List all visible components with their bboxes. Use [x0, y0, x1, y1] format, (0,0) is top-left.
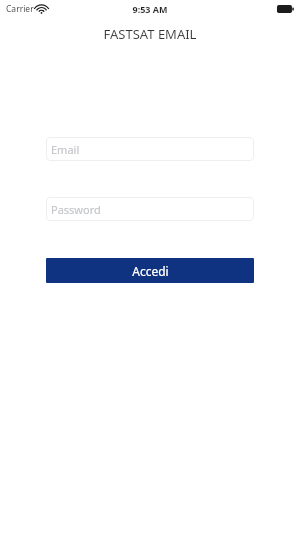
staticText: Accedi — [132, 263, 169, 279]
staticText: Carrier — [6, 3, 34, 15]
other: Wi-Fi signal — [37, 5, 46, 14]
staticText: 9:53 AM — [132, 3, 168, 15]
button[interactable]: Accedi — [46, 258, 254, 283]
button[interactable]: Password — [46, 197, 254, 221]
staticText: Password — [51, 202, 101, 217]
staticText: FASTSAT EMAIL — [0, 25, 300, 43]
staticText: Email — [51, 142, 80, 157]
other: Battery full — [277, 5, 294, 13]
button[interactable]: Email — [46, 137, 254, 161]
